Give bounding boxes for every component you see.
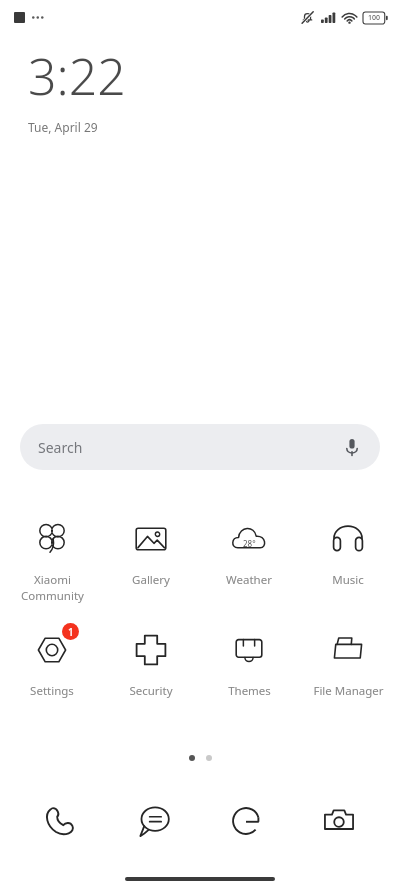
staticText: Gallery <box>132 572 170 588</box>
staticText: Themes <box>228 683 271 699</box>
button[interactable]: Security <box>105 625 197 699</box>
staticText: Weather <box>226 572 272 588</box>
staticText: Settings <box>30 683 74 699</box>
staticText: Tue, April 29 <box>28 119 98 135</box>
staticText: Search <box>38 438 83 457</box>
button[interactable]: Google <box>215 790 277 852</box>
staticText: Xiaomi Community <box>21 572 84 603</box>
button[interactable]: Search <box>20 424 380 470</box>
staticText: Music <box>332 572 364 588</box>
button[interactable]: Voice search <box>338 433 366 461</box>
staticText: 100 <box>368 13 381 23</box>
button[interactable]: Phone <box>30 790 92 852</box>
button[interactable]: Xiaomi Community <box>6 514 98 603</box>
staticText: 1 <box>68 625 74 639</box>
button[interactable]: 28° <box>203 514 295 588</box>
button[interactable]: Messages <box>123 790 185 852</box>
button[interactable]: Themes <box>203 625 295 699</box>
button[interactable]: File Manager <box>302 625 394 699</box>
button[interactable]: 1 <box>6 625 98 699</box>
staticText: 3:22 <box>28 42 126 110</box>
staticText: 28° <box>243 538 256 549</box>
button[interactable]: Gallery <box>105 514 197 588</box>
staticText: Security <box>129 683 173 699</box>
staticText: File Manager <box>313 683 384 699</box>
button[interactable]: Camera <box>308 790 370 852</box>
button[interactable]: Music <box>302 514 394 588</box>
